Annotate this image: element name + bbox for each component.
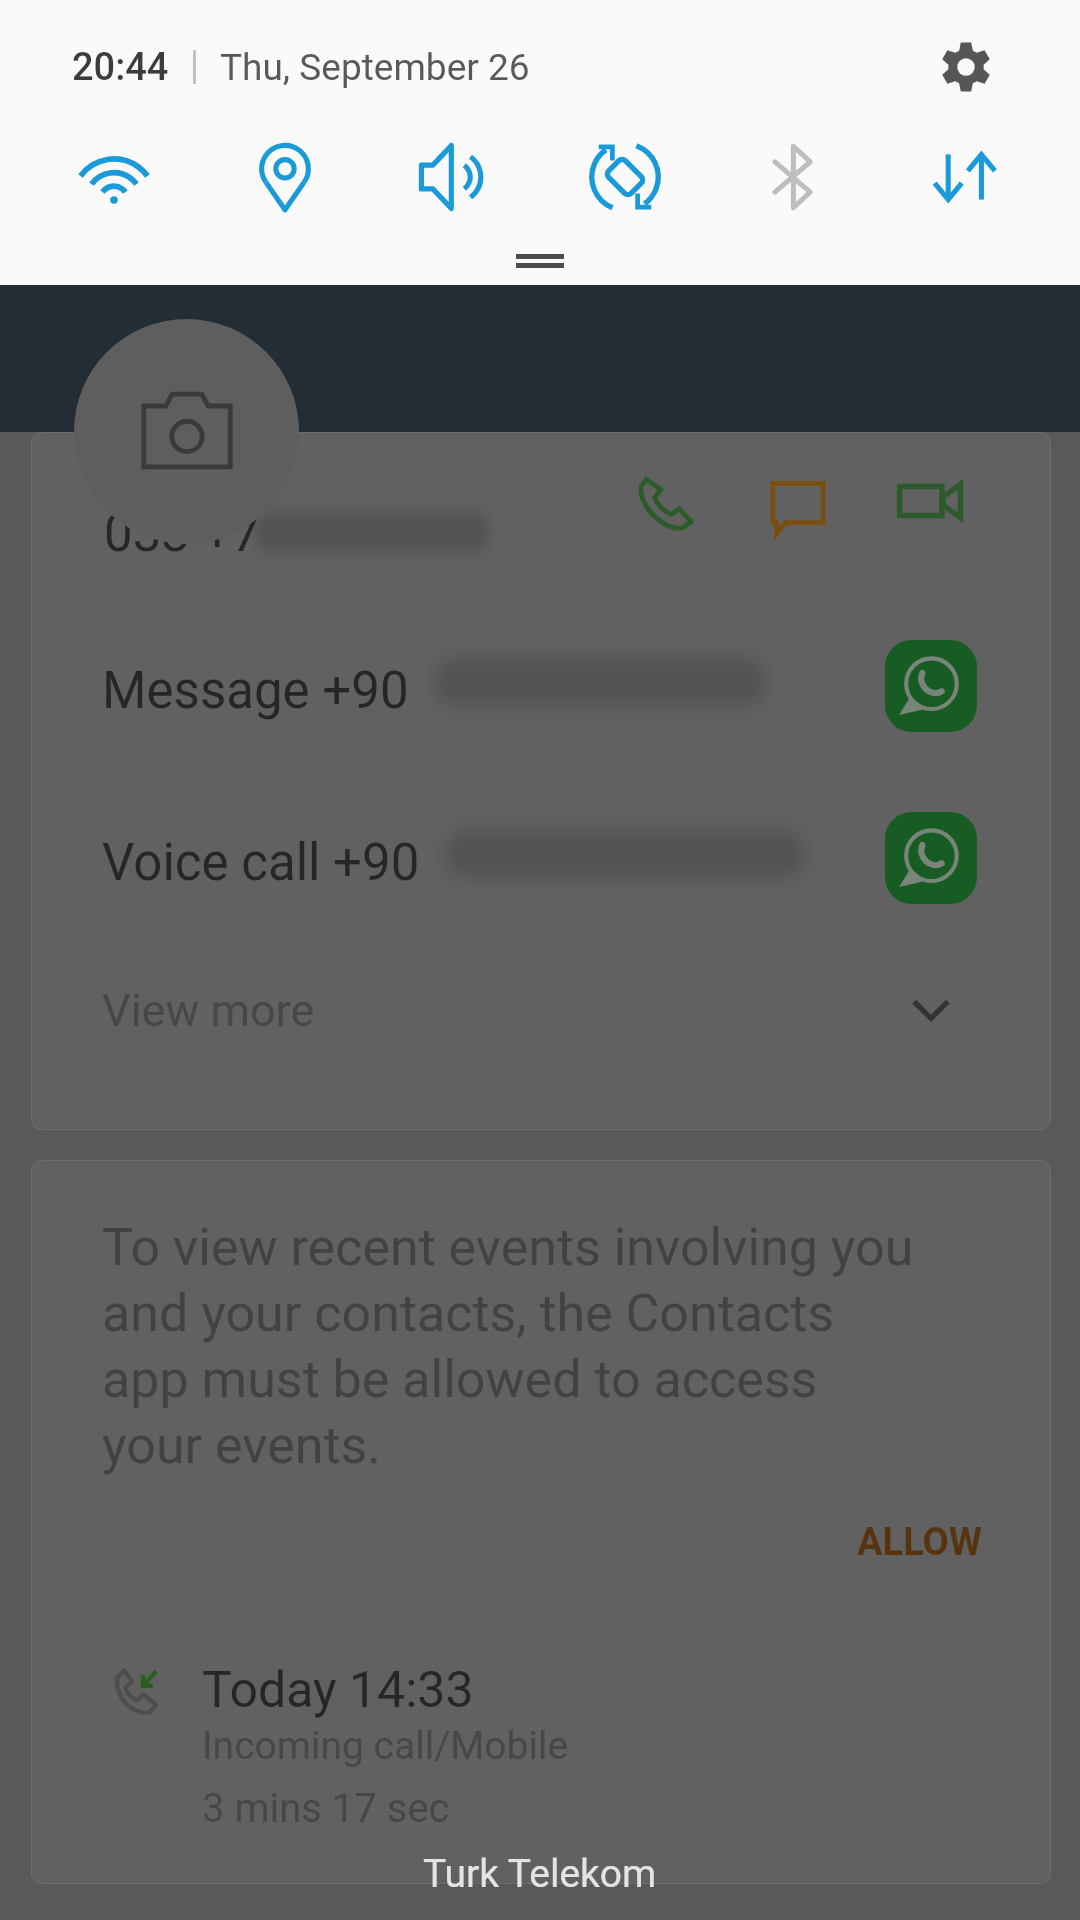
button[interactable]: Call xyxy=(608,443,726,561)
staticText: Today 14:33 xyxy=(202,1661,474,1720)
button[interactable]: ALLOW xyxy=(847,1508,993,1577)
button[interactable]: Wi-Fi xyxy=(28,122,199,232)
button[interactable]: Auto rotate xyxy=(540,122,710,232)
staticText: 3 mins 17 sec xyxy=(202,1785,450,1832)
button[interactable]: Message +90 xyxy=(31,608,1051,775)
staticText: Thu, September 26 xyxy=(220,46,530,89)
button[interactable]: Sound xyxy=(370,122,540,232)
button[interactable]: Mobile data xyxy=(880,122,1050,232)
button[interactable]: Video call xyxy=(871,442,989,560)
button[interactable]: Settings xyxy=(920,21,1012,113)
staticText: Voice call +90 xyxy=(102,833,420,893)
staticText: Message +90 xyxy=(102,661,409,721)
staticText: View more xyxy=(102,984,315,1037)
button[interactable]: Message xyxy=(739,448,857,566)
button[interactable]: Location xyxy=(199,122,370,232)
button[interactable]: Bluetooth xyxy=(710,122,880,232)
button[interactable]: Contact photo xyxy=(74,319,299,544)
staticText: 033 +7 xyxy=(104,504,261,564)
staticText: Turk Telekom xyxy=(423,1851,657,1897)
button[interactable]: 033 +7 xyxy=(31,432,1051,580)
staticText: Incoming call/Mobile xyxy=(202,1723,569,1769)
staticText: To view recent events involving you and … xyxy=(102,1217,914,1476)
staticText: 20:44 xyxy=(72,45,169,90)
button[interactable]: View more xyxy=(31,935,1051,1085)
button[interactable]: Voice call +90 xyxy=(31,780,1051,947)
